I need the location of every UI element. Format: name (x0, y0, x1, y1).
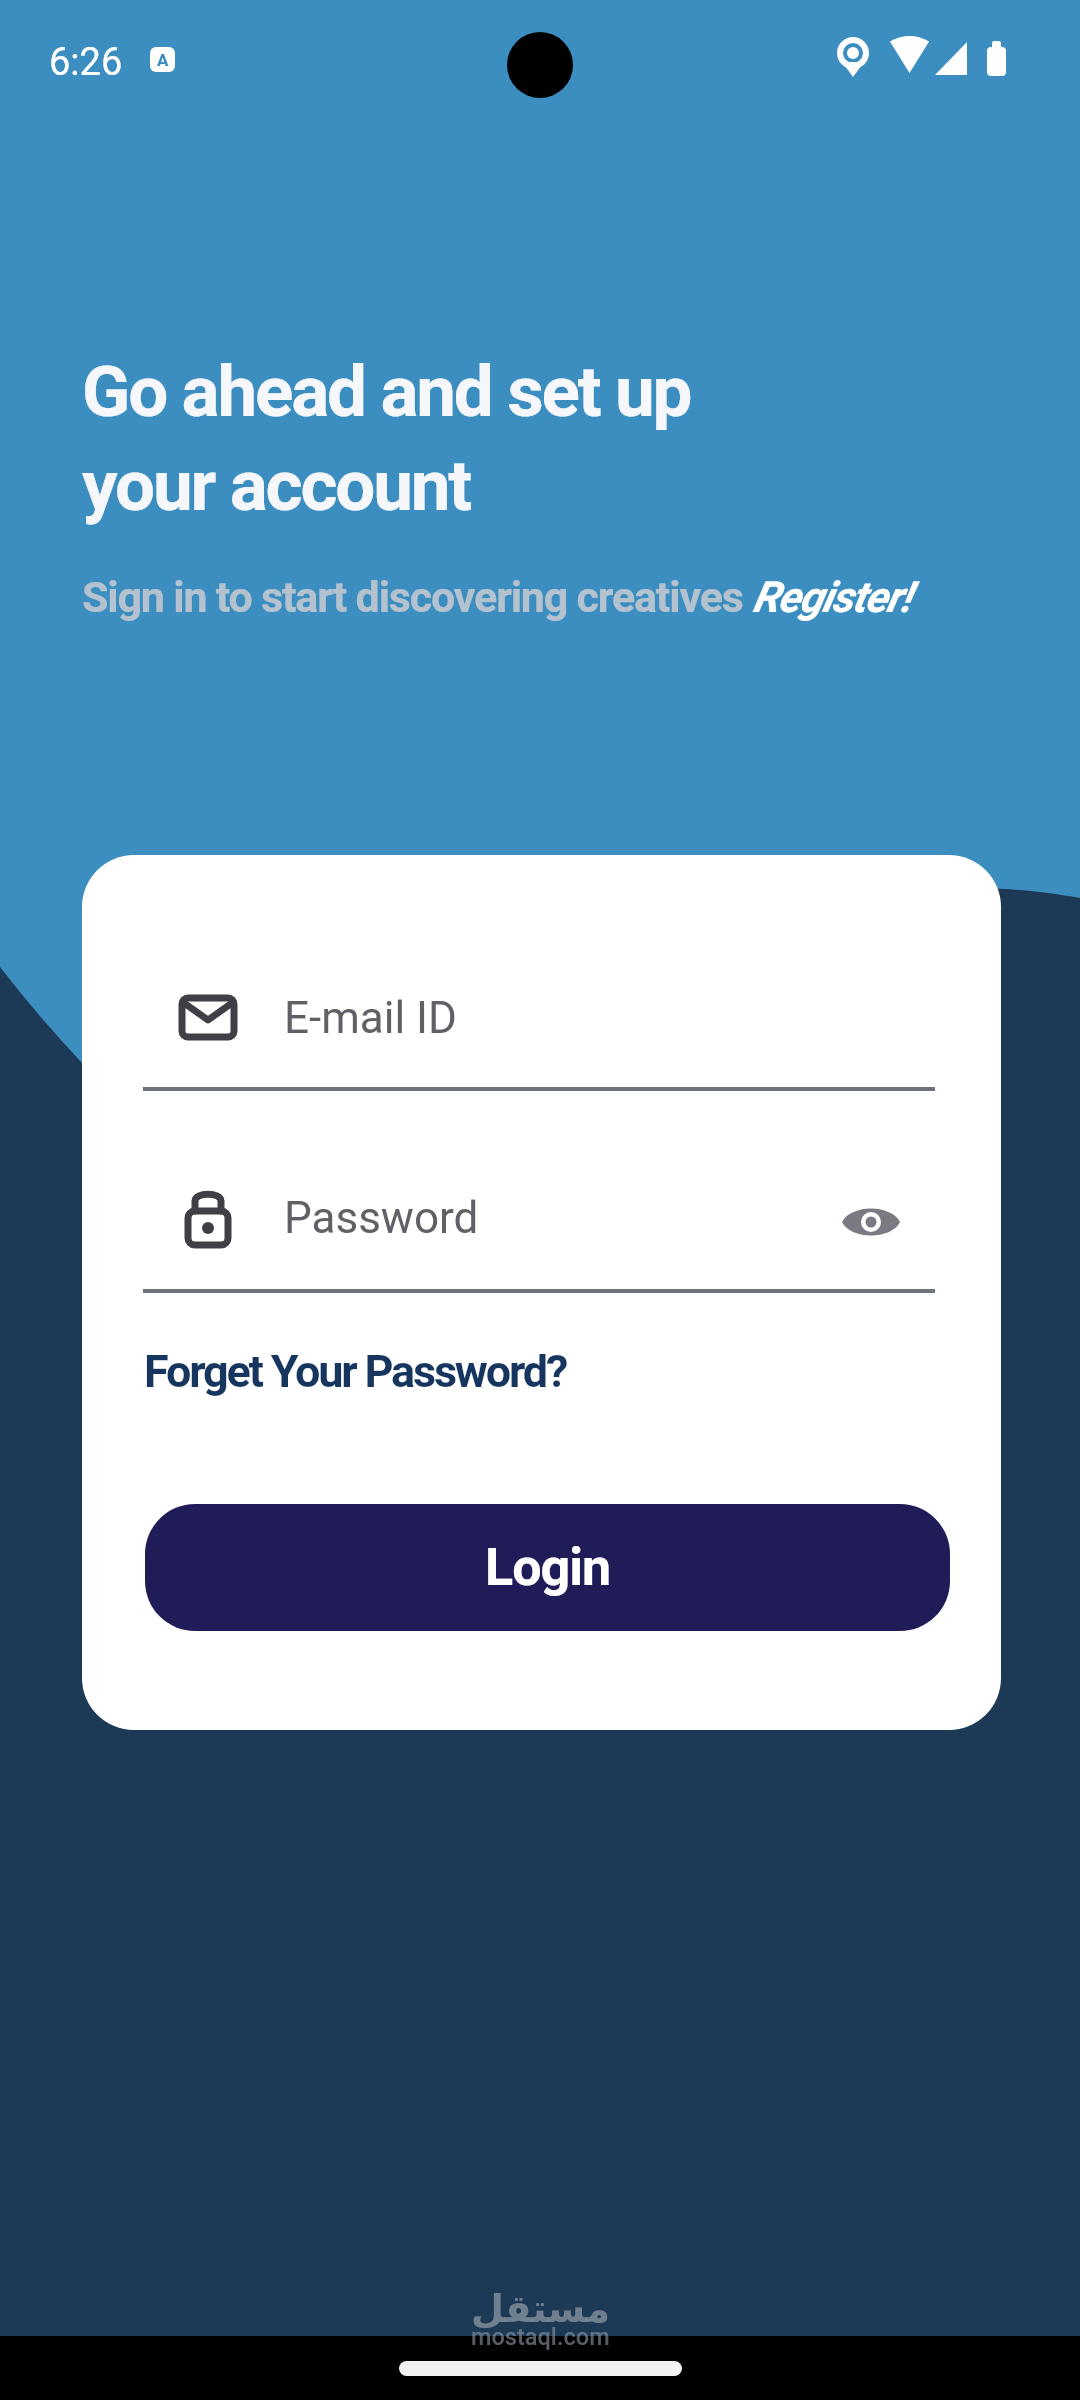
staticText: mostaql.com (471, 2323, 610, 2351)
staticText: 6:26 (49, 40, 123, 85)
staticText: Password (284, 1192, 479, 1244)
staticText: مستقل (471, 2287, 610, 2331)
staticText: Sign in to start discovering creatives R… (82, 572, 911, 622)
staticText: A (157, 50, 169, 70)
staticText: Go ahead and set up (82, 350, 691, 433)
button[interactable]: Login (145, 1504, 950, 1631)
staticText: E-mail ID (284, 992, 457, 1044)
button[interactable] (842, 1202, 900, 1242)
button[interactable]: Forget Your Password? (144, 1345, 567, 1398)
staticText: your account (82, 444, 471, 527)
staticText: Login (485, 1537, 611, 1598)
